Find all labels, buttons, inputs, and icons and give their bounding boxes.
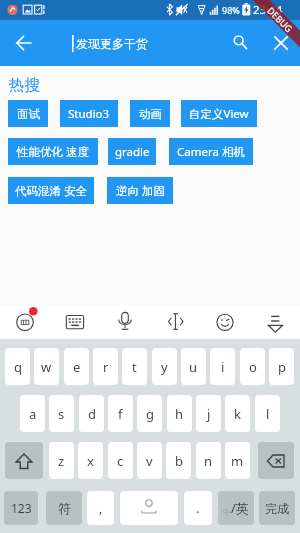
button[interactable]: s [49,395,74,432]
button[interactable]: w [34,348,59,385]
button[interactable]: Stickers [8,305,42,339]
button[interactable]: f [108,395,133,432]
button[interactable]: Back [0,20,47,66]
button[interactable]: 逆向 加固 [107,177,173,204]
button[interactable]: 完成 [259,491,295,525]
staticText: k [234,405,241,423]
button[interactable]: , [87,491,114,525]
button[interactable]: Switch language [218,491,254,525]
staticText: /英 [231,499,249,517]
staticText: c [117,452,124,470]
button[interactable]: Search [221,20,261,66]
button[interactable]: k [225,395,250,432]
staticText: f [118,405,123,423]
button[interactable]: Hide keyboard [258,305,292,339]
button[interactable]: Shift [5,442,43,479]
staticText: g [146,405,154,423]
staticText: DEBUG [265,4,296,35]
staticText: 代码混淆 安全 [15,183,87,199]
staticText: j [207,405,211,423]
staticText: o [249,358,257,376]
button[interactable]: e [64,348,89,385]
staticText: 面试 [17,107,40,121]
staticText: y [161,358,168,376]
button[interactable]: 符 [46,491,82,525]
button[interactable]: y [152,348,177,385]
button[interactable]: p [269,348,294,385]
button[interactable]: q [5,348,30,385]
staticText: w [41,358,52,376]
button[interactable]: gradle [108,138,156,165]
button[interactable]: h [167,395,192,432]
button[interactable]: o [240,348,265,385]
staticText: t [132,358,137,376]
button[interactable]: 动画 [130,100,170,127]
staticText: d [88,405,96,423]
staticText: m [231,452,244,470]
button[interactable]: Studio3 [60,100,118,127]
staticText: Studio3 [68,106,110,122]
staticText: i [221,358,225,376]
button[interactable]: n [196,442,221,479]
button[interactable]: z [49,442,74,479]
staticText: 发现更多干货 [76,36,148,51]
button[interactable]: t [122,348,147,385]
button[interactable]: x [78,442,103,479]
staticText: 动画 [139,107,162,121]
staticText: . [196,499,200,517]
staticText: a [29,405,37,423]
button[interactable]: 代码混淆 安全 [8,177,94,204]
button[interactable]: 性能优化 速度 [8,138,98,165]
staticText: 热搜 [9,75,40,95]
button[interactable]: j [196,395,221,432]
button[interactable]: Backspace [258,442,294,479]
staticText: e [73,358,81,376]
staticText: v [146,452,153,470]
staticText: z [58,452,65,470]
button[interactable]: Space [120,491,178,525]
staticText: 性能优化 速度 [17,144,89,160]
staticText: 中 [223,507,231,517]
staticText: , [99,499,103,517]
button[interactable]: l [255,395,280,432]
staticText: 自定义View [189,106,249,122]
staticText: r [103,358,109,376]
staticText: x [87,452,94,470]
staticText: 符 [58,500,71,516]
button[interactable]: m [225,442,250,479]
staticText: 逆向 加固 [116,183,165,199]
staticText: s [58,405,65,423]
staticText: p [278,358,286,376]
staticText: 123 [11,500,32,516]
button[interactable]: Camera 相机 [169,138,253,165]
button[interactable]: c [108,442,133,479]
staticText: gradle [115,144,150,160]
staticText: n [204,452,213,470]
button[interactable]: d [79,395,104,432]
staticText: b [175,452,183,470]
staticText: u [189,358,198,376]
staticText: Camera 相机 [177,144,245,160]
button[interactable]: Close [261,20,300,66]
button[interactable]: v [137,442,162,479]
button[interactable]: g [137,395,162,432]
button[interactable]: r [93,348,118,385]
staticText: 完成 [265,501,289,516]
staticText: 98% [222,4,240,16]
staticText: q [14,358,22,376]
button[interactable]: Emoji [208,305,242,339]
button[interactable]: 自定义View [181,100,257,127]
button[interactable]: Move cursor [158,305,192,339]
button[interactable]: . [184,491,212,525]
button[interactable]: 123 [4,491,38,525]
button[interactable]: Voice input [108,305,142,339]
staticText: 23:44 [253,2,283,18]
button[interactable]: i [210,348,235,385]
staticText: h [175,405,184,423]
button[interactable]: u [181,348,206,385]
button[interactable]: Keyboard [58,305,92,339]
button[interactable]: 面试 [8,100,48,127]
staticText: l [266,405,270,423]
button[interactable]: a [20,395,45,432]
button[interactable]: b [166,442,191,479]
